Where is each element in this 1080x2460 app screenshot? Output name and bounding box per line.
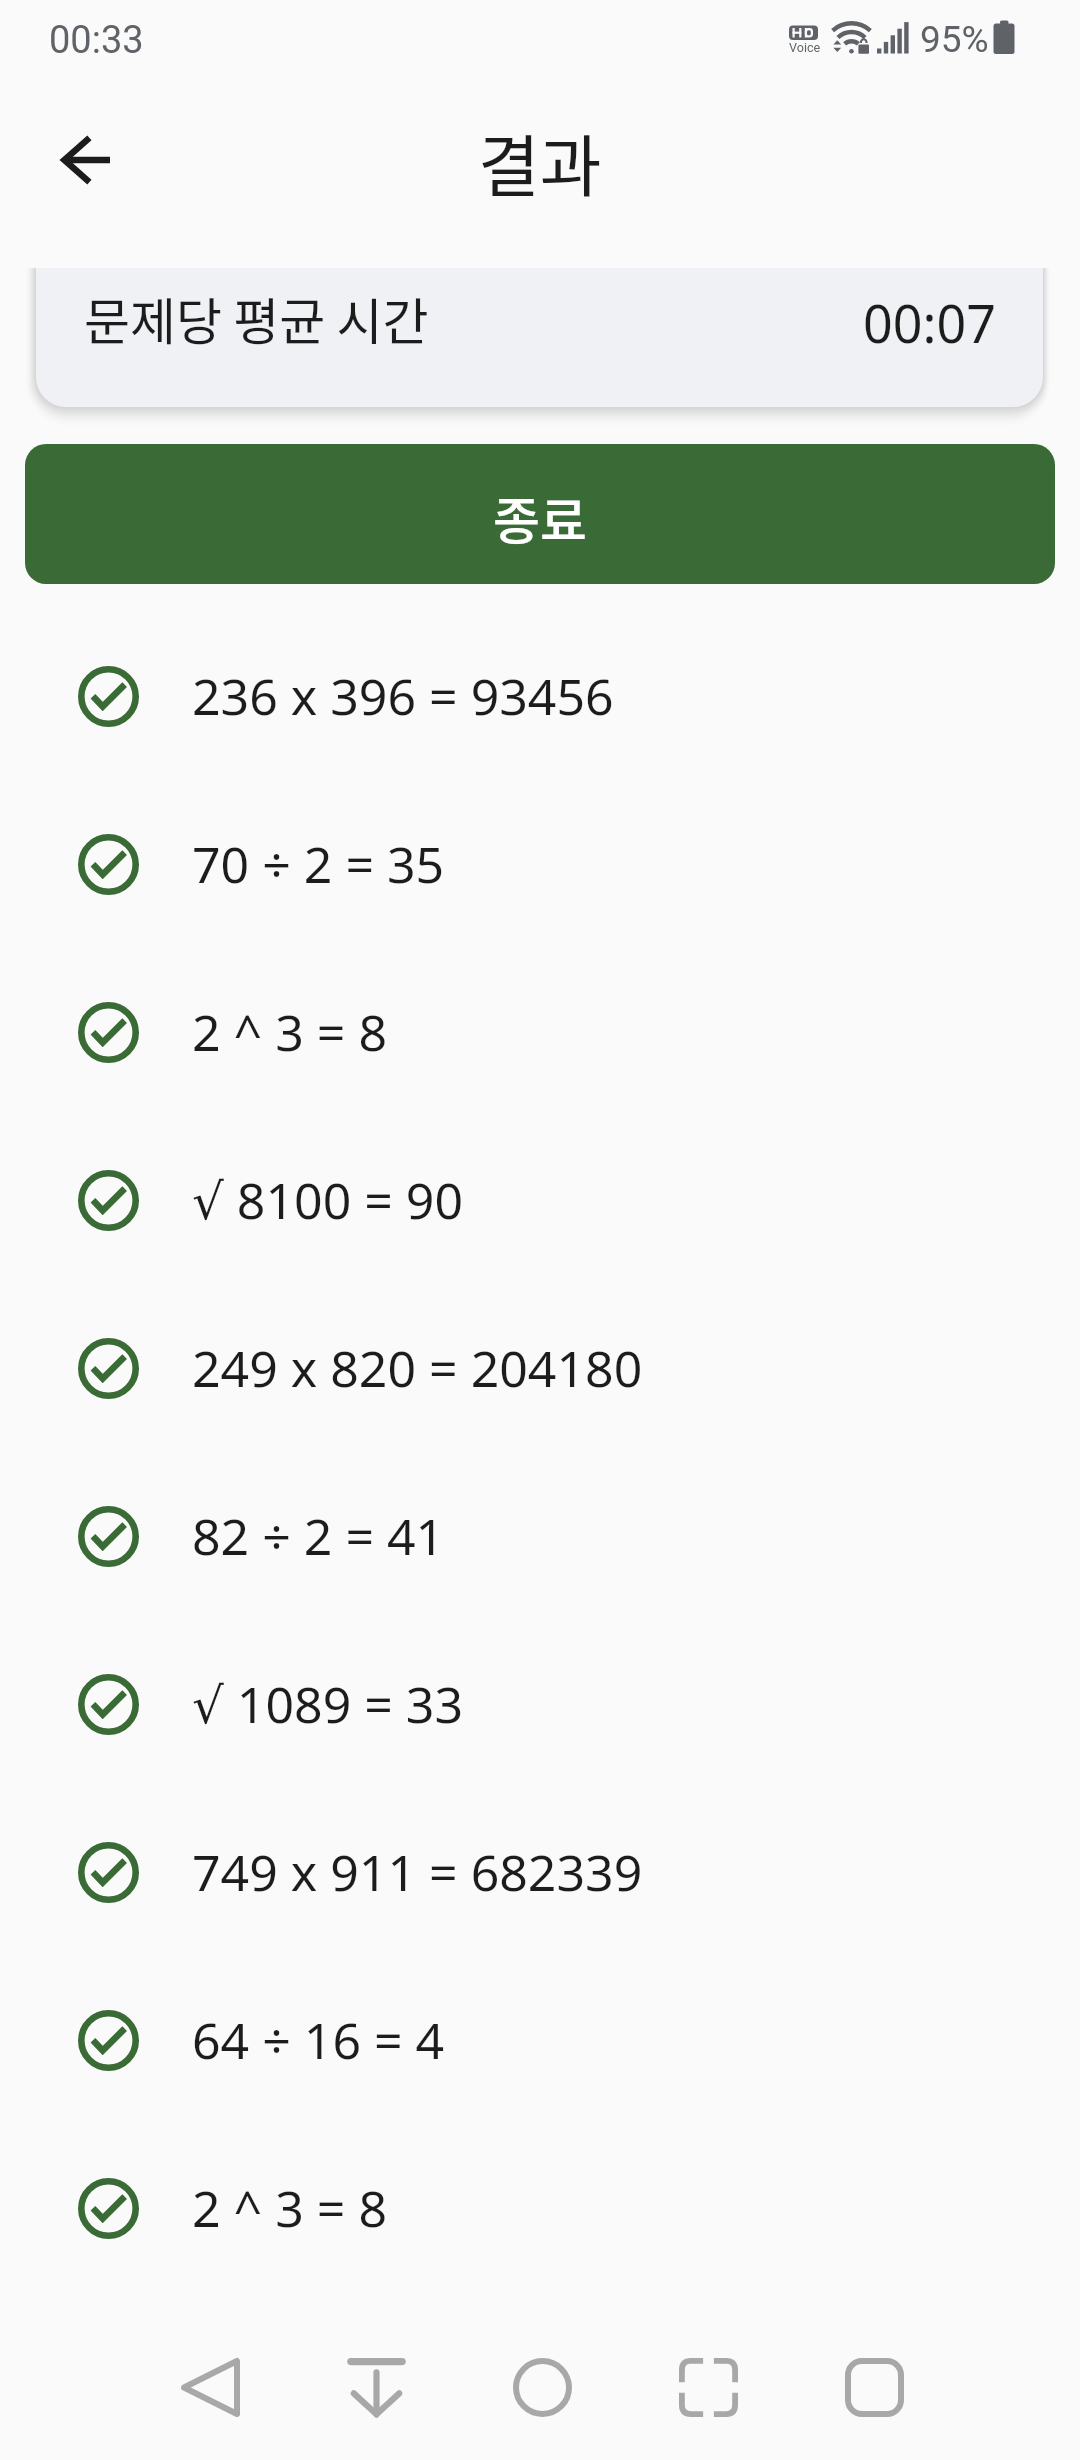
- staticText: 82 ÷ 2 = 41: [192, 1502, 445, 1570]
- staticText: 문제당 평균 시간: [84, 282, 429, 354]
- button[interactable]: 236 x 396 = 93456: [0, 612, 1080, 780]
- staticText: 249 x 820 = 204180: [192, 1334, 643, 1402]
- button[interactable]: Home: [459, 2314, 625, 2460]
- button[interactable]: 749 x 911 = 682339: [0, 1788, 1080, 1956]
- staticText: √ 1089 = 33: [192, 1670, 464, 1738]
- button[interactable]: 82 ÷ 2 = 41: [0, 1452, 1080, 1620]
- staticText: 2 ^ 3 = 8: [192, 2174, 387, 2242]
- button[interactable]: Back: [28, 105, 138, 215]
- button[interactable]: 64 ÷ 16 = 4: [0, 1956, 1080, 2124]
- staticText: 95%: [920, 18, 989, 61]
- staticText: 70 ÷ 2 = 35: [192, 830, 445, 898]
- staticText: 결과: [478, 113, 602, 210]
- staticText: 종료: [493, 481, 587, 555]
- staticText: 749 x 911 = 682339: [192, 1838, 643, 1906]
- staticText: 2 ^ 3 = 8: [192, 998, 387, 1066]
- staticText: 64 ÷ 16 = 4: [192, 2006, 445, 2074]
- button[interactable]: Back: [127, 2314, 293, 2460]
- staticText: 236 x 396 = 93456: [192, 662, 614, 730]
- button[interactable]: Recents: [791, 2314, 957, 2460]
- staticText: 00:07: [863, 287, 996, 358]
- button[interactable]: 종료: [25, 444, 1055, 584]
- button[interactable]: Screenshot: [625, 2314, 791, 2460]
- staticText: 00:33: [49, 18, 144, 63]
- staticText: √ 8100 = 90: [192, 1166, 464, 1234]
- staticText: Voice: [789, 40, 821, 55]
- button[interactable]: 249 x 820 = 204180: [0, 1284, 1080, 1452]
- button[interactable]: √ 8100 = 90: [0, 1116, 1080, 1284]
- button[interactable]: 2 ^ 3 = 8: [0, 948, 1080, 1116]
- button[interactable]: 2 ^ 3 = 8: [0, 2124, 1080, 2292]
- button[interactable]: 문제당 평균 시간: [36, 268, 1043, 407]
- button[interactable]: √ 1089 = 33: [0, 1620, 1080, 1788]
- button[interactable]: 70 ÷ 2 = 35: [0, 780, 1080, 948]
- button[interactable]: Hide keyboard: [293, 2314, 459, 2460]
